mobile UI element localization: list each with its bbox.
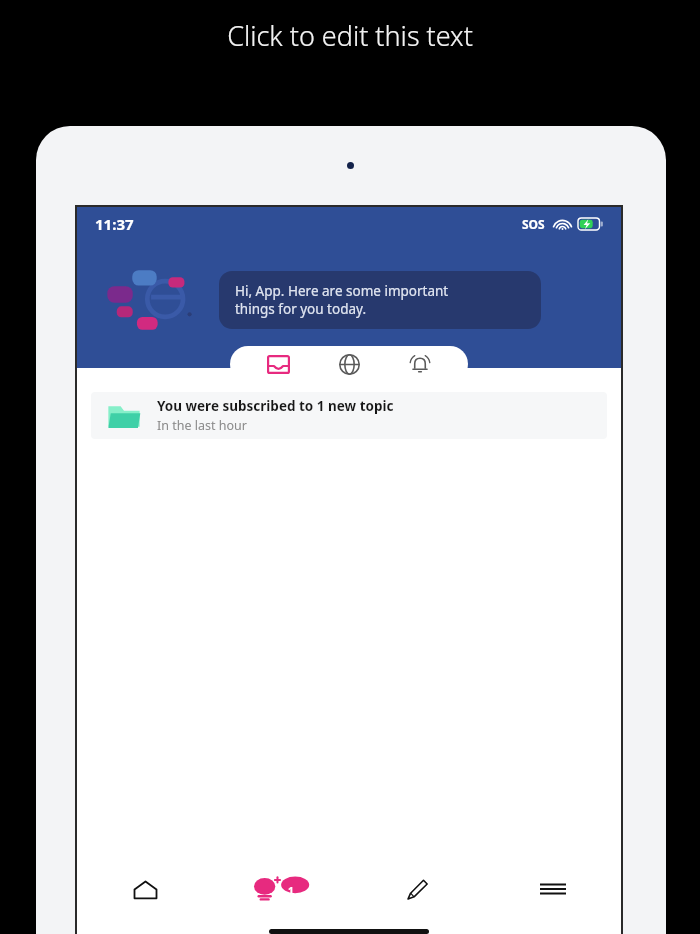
button[interactable]: Notifications — [397, 346, 443, 382]
staticText: In the last hour — [157, 417, 247, 434]
button[interactable]: Hi, App. Here are some important things … — [219, 271, 541, 329]
staticText: 1 — [288, 884, 294, 895]
staticText: SOS — [522, 216, 545, 232]
staticText: You were subscribed to 1 new topic — [157, 397, 394, 415]
button[interactable]: Compose — [349, 860, 485, 918]
button[interactable]: Ideas, 1 new — [213, 860, 349, 918]
staticText: Click to edit this text — [227, 17, 473, 54]
button[interactable]: You were subscribed to 1 new topic — [91, 392, 607, 439]
staticText: Hi, App. Here are some important things … — [235, 282, 449, 318]
button[interactable]: Inbox — [255, 346, 301, 382]
button[interactable]: Menu — [485, 860, 621, 918]
button[interactable]: Web — [326, 346, 372, 382]
button[interactable]: Home — [77, 860, 213, 918]
staticText: 11:37 — [95, 214, 134, 234]
